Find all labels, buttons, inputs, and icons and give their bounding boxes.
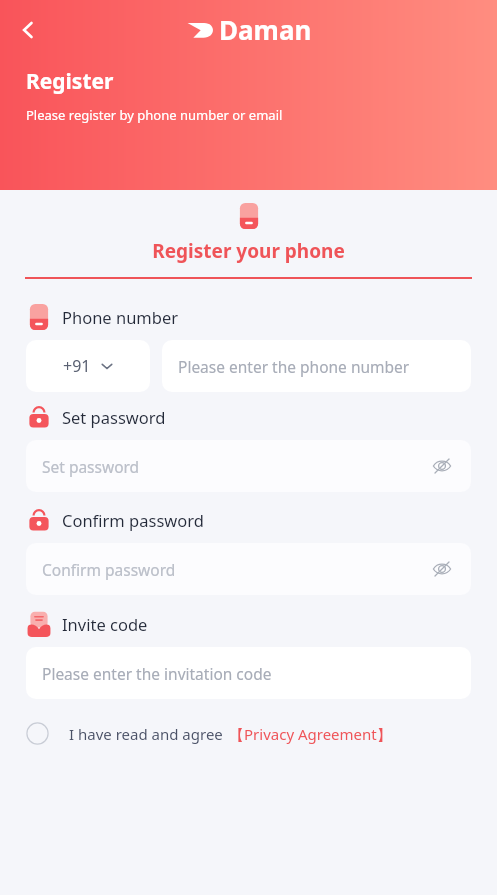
- button[interactable]: Set password: [26, 440, 471, 492]
- button[interactable]: 【Privacy Agreement】: [229, 724, 392, 744]
- staticText: Confirm password: [42, 559, 176, 580]
- button[interactable]: Please enter the invitation code: [26, 647, 471, 699]
- button[interactable]: I have read and agree: [26, 722, 497, 745]
- button[interactable]: Show password: [429, 556, 455, 582]
- staticText: Please enter the phone number: [178, 356, 410, 377]
- staticText: I have read and agree: [69, 724, 223, 744]
- staticText: Daman: [219, 12, 312, 47]
- staticText: Invite code: [62, 613, 148, 635]
- staticText: Set password: [42, 456, 140, 477]
- staticText: Please register by phone number or email: [26, 106, 283, 124]
- button[interactable]: Confirm password: [26, 543, 471, 595]
- staticText: +91: [63, 355, 91, 377]
- staticText: Register your phone: [0, 238, 497, 264]
- button[interactable]: Back: [8, 10, 48, 50]
- button[interactable]: +91: [26, 340, 150, 392]
- button[interactable]: Show password: [429, 453, 455, 479]
- staticText: Confirm password: [62, 509, 204, 531]
- staticText: Please enter the invitation code: [42, 663, 272, 684]
- staticText: Phone number: [62, 306, 179, 328]
- button[interactable]: Please enter the phone number: [162, 340, 471, 392]
- staticText: Set password: [62, 406, 166, 428]
- staticText: Register: [26, 67, 114, 96]
